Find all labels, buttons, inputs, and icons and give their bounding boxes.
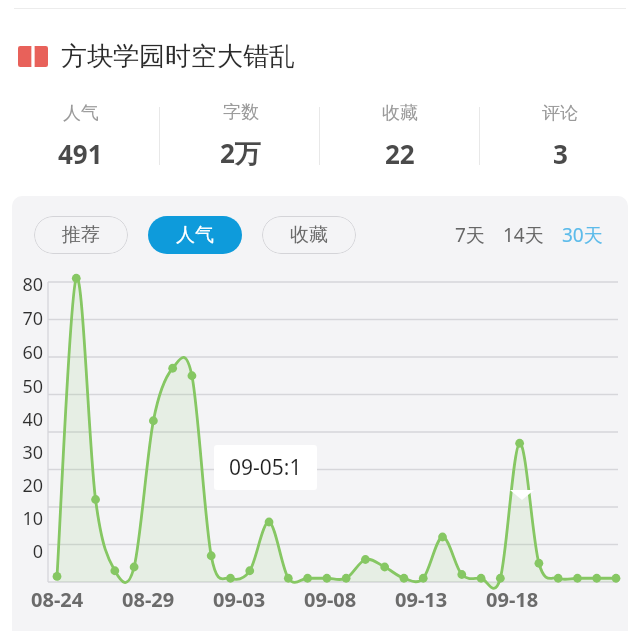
staticText: 60 — [12, 340, 43, 365]
staticText: 22 — [385, 136, 415, 171]
staticText: 20 — [12, 473, 43, 498]
button[interactable]: 7天 — [452, 216, 488, 254]
staticText: 推荐 — [62, 223, 100, 247]
staticText: 70 — [12, 306, 43, 331]
staticText: 收藏 — [290, 223, 328, 247]
button[interactable]: Book — [18, 38, 295, 74]
other: Book — [18, 46, 48, 67]
staticText: 09-18 — [486, 586, 539, 613]
staticText: 491 — [58, 136, 103, 171]
staticText: 人气 — [176, 223, 214, 247]
staticText: 14天 — [503, 222, 544, 248]
button[interactable]: 推荐 — [34, 216, 128, 254]
staticText: 40 — [12, 407, 43, 432]
staticText: 08-24 — [31, 586, 84, 613]
staticText: 人气 — [63, 102, 99, 125]
staticText: 08-29 — [122, 586, 175, 613]
button[interactable]: 人气 — [0, 92, 160, 180]
staticText: 方块学园时空大错乱 — [61, 40, 295, 73]
staticText: 字数 — [223, 101, 259, 124]
button[interactable]: 评论 — [480, 92, 640, 180]
staticText: 0 — [12, 539, 43, 564]
button[interactable]: 收藏 — [320, 92, 480, 180]
button[interactable]: 30天 — [559, 216, 606, 254]
staticText: 09-13 — [395, 586, 448, 613]
staticText: 80 — [12, 272, 43, 297]
staticText: 09-03 — [213, 586, 266, 613]
button[interactable]: 14天 — [500, 216, 547, 254]
staticText: 30天 — [562, 222, 603, 248]
button[interactable]: 人气 — [148, 216, 242, 254]
staticText: 09-05:1 — [229, 453, 302, 482]
staticText: 09-08 — [304, 586, 357, 613]
button[interactable]: 字数 — [160, 92, 320, 180]
button[interactable]: 收藏 — [262, 216, 356, 254]
staticText: 3 — [553, 136, 568, 171]
staticText: 2万 — [220, 135, 261, 171]
staticText: 30 — [12, 440, 43, 465]
staticText: 评论 — [542, 102, 578, 125]
staticText: 7天 — [455, 222, 485, 248]
staticText: 10 — [12, 506, 43, 531]
staticText: 收藏 — [382, 102, 418, 125]
staticText: 50 — [12, 374, 43, 399]
